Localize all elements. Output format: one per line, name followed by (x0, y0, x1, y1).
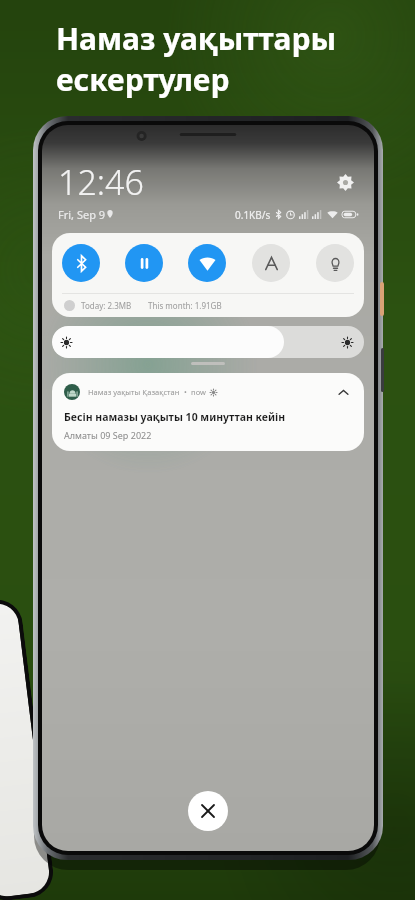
button[interactable]: Намаз уақыты Қазақстан (52, 373, 364, 451)
button[interactable]: Flashlight (316, 244, 354, 282)
staticText: Fri, Sep 9 (58, 207, 106, 222)
staticText: Today: 2.3MB (81, 300, 132, 311)
button[interactable]: Close (188, 791, 228, 831)
button[interactable]: Auto brightness (252, 244, 290, 282)
button[interactable]: Today: 2.3MB (52, 294, 364, 317)
button[interactable]: Wi-Fi (188, 244, 226, 282)
button[interactable]: Brightness (52, 326, 364, 358)
staticText: ескертулер (56, 59, 230, 100)
button[interactable]: Bluetooth (62, 244, 100, 282)
staticText: This month: 1.91GB (148, 300, 222, 311)
button[interactable]: Collapse (334, 383, 352, 401)
staticText: Намаз уақыттары (56, 18, 337, 59)
staticText: 0.1KB/s (235, 208, 271, 222)
staticText: now (191, 387, 206, 397)
staticText: 12:46 (58, 159, 144, 205)
button[interactable]: Mobile data (125, 244, 163, 282)
button[interactable]: Settings (332, 169, 358, 195)
staticText: Намаз уақыты Қазақстан (88, 387, 180, 397)
staticText: • (184, 387, 187, 397)
staticText: Бесін намазы уақыты 10 минуттан кейін (64, 410, 286, 424)
staticText: Алматы 09 Sep 2022 (64, 429, 152, 441)
